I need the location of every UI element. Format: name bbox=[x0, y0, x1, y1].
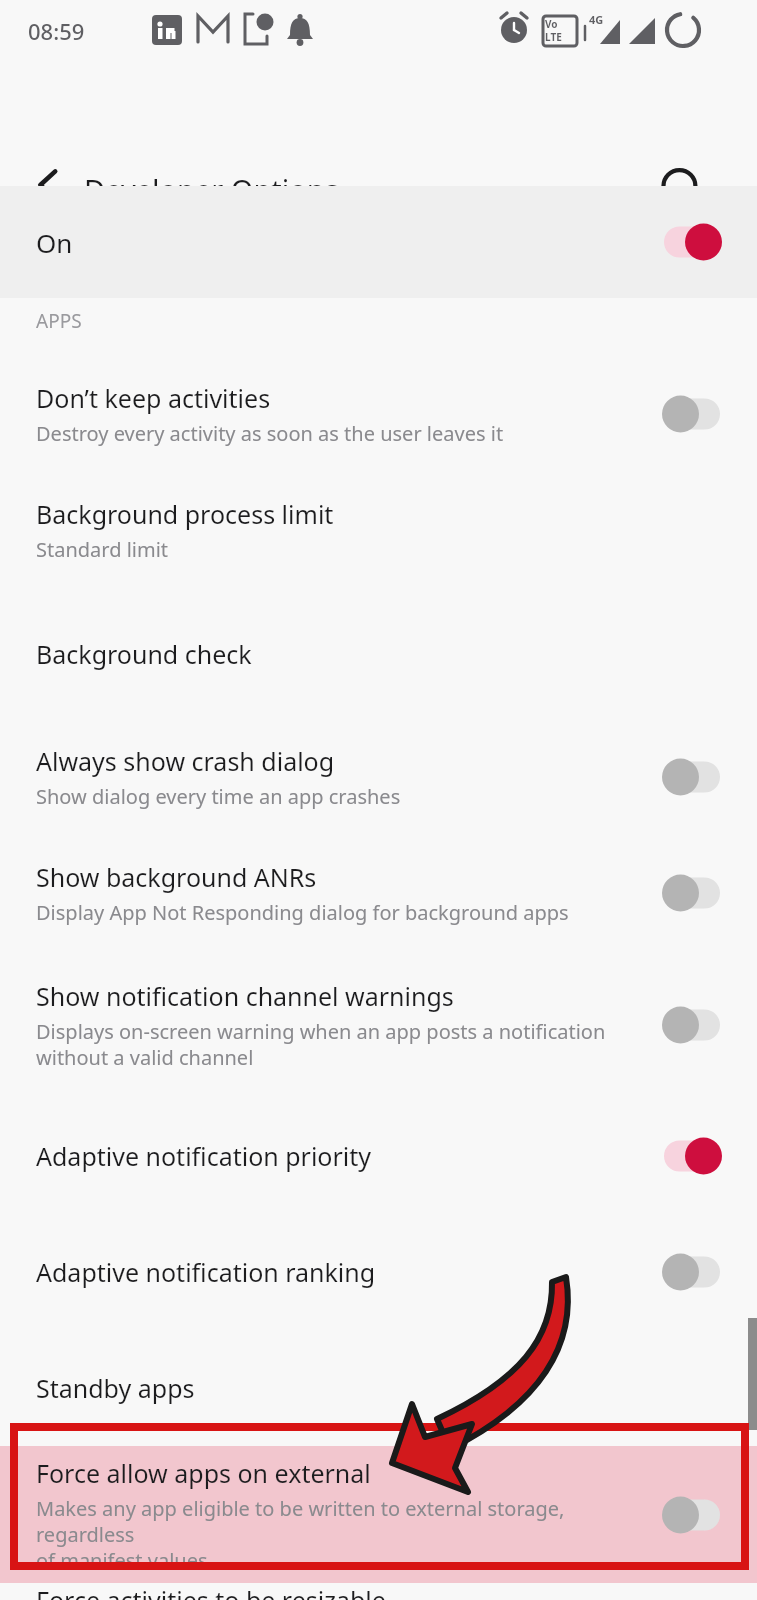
staticText: Displays on-screen warning when an app p… bbox=[36, 1018, 606, 1071]
staticText: Standard limit bbox=[36, 536, 169, 563]
button[interactable]: Adaptive notification ranking bbox=[0, 1214, 757, 1330]
button[interactable]: Show notification channel warnings bbox=[0, 951, 757, 1098]
button[interactable]: Show background ANRs bbox=[0, 835, 757, 951]
staticText: APPS bbox=[36, 308, 82, 334]
staticText: Always show crash dialog bbox=[36, 744, 335, 778]
staticText: LTE bbox=[545, 30, 562, 44]
staticText: Makes any app eligible to be written to … bbox=[36, 1495, 652, 1574]
button[interactable]: Force activities to be resizable bbox=[0, 1583, 757, 1600]
button[interactable]: Search bbox=[650, 158, 714, 222]
button[interactable]: On bbox=[0, 186, 757, 298]
staticText: Destroy every activity as soon as the us… bbox=[36, 420, 504, 447]
staticText: Show dialog every time an app crashes bbox=[36, 783, 401, 810]
staticText: Don’t keep activities bbox=[36, 381, 271, 415]
button[interactable]: Background check bbox=[0, 588, 757, 719]
staticText: 08:59 bbox=[28, 16, 85, 46]
staticText: Show background ANRs bbox=[36, 860, 317, 894]
staticText: Adaptive notification ranking bbox=[36, 1255, 376, 1289]
button[interactable]: Adaptive notification priority bbox=[0, 1098, 757, 1214]
button[interactable]: Force allow apps on external bbox=[0, 1446, 757, 1583]
button[interactable]: Don’t keep activities bbox=[0, 356, 757, 472]
staticText: 4G bbox=[589, 12, 604, 27]
staticText: Background process limit bbox=[36, 497, 334, 531]
button[interactable]: Always show crash dialog bbox=[0, 719, 757, 835]
staticText: Background check bbox=[36, 637, 252, 671]
staticText: On bbox=[36, 225, 664, 260]
staticText: Standby apps bbox=[36, 1371, 195, 1405]
staticText: Show notification channel warnings bbox=[36, 979, 454, 1013]
staticText: Force activities to be resizable bbox=[36, 1583, 386, 1600]
button[interactable]: Background process limit bbox=[0, 472, 757, 588]
button[interactable]: Standby apps bbox=[0, 1330, 757, 1446]
staticText: Adaptive notification priority bbox=[36, 1139, 372, 1173]
staticText: Force allow apps on external bbox=[36, 1456, 371, 1490]
staticText: Display App Not Responding dialog for ba… bbox=[36, 899, 569, 926]
staticText: Vo bbox=[545, 17, 558, 31]
button[interactable]: Back bbox=[18, 154, 80, 216]
staticText: Developer Options bbox=[84, 170, 339, 209]
